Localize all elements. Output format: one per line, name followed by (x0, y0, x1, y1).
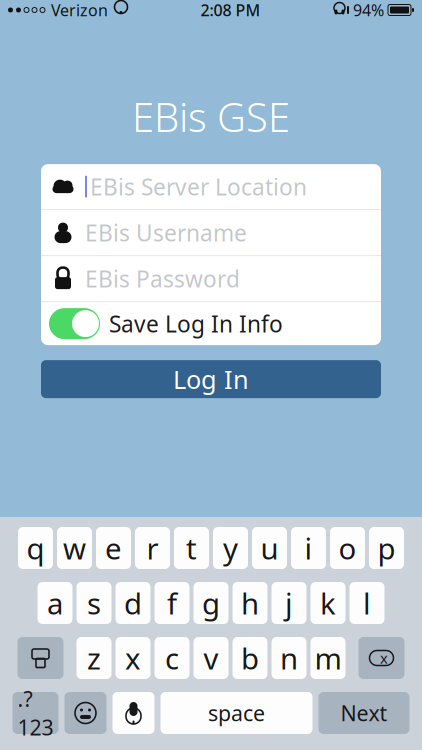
button[interactable]: n (271, 637, 306, 679)
staticText: z (87, 638, 101, 677)
staticText: Next (340, 699, 387, 727)
staticText: k (320, 583, 336, 622)
staticText: Verizon (51, 0, 108, 21)
staticText: e (105, 528, 122, 567)
button[interactable]: p (369, 527, 404, 569)
button[interactable]: m (310, 637, 345, 679)
button[interactable]: EBis Password (41, 256, 381, 302)
button[interactable]: q (18, 527, 53, 569)
staticText: i (304, 528, 312, 567)
staticText: d (124, 583, 142, 622)
button[interactable]: Shift (17, 637, 63, 679)
button[interactable]: c (154, 637, 189, 679)
staticText: n (280, 638, 298, 677)
staticText: c (165, 638, 179, 677)
staticText: t (186, 528, 197, 567)
staticText: EBis Password (85, 264, 240, 294)
staticText: u (260, 528, 278, 567)
button[interactable]: r (135, 527, 170, 569)
staticText: EBis GSE (132, 90, 290, 143)
staticText: Log In (173, 362, 249, 396)
button[interactable]: Log In (41, 360, 381, 398)
staticText: g (202, 583, 220, 622)
staticText: w (63, 528, 86, 567)
button[interactable]: o (330, 527, 365, 569)
button[interactable]: x (115, 637, 150, 679)
staticText: q (26, 528, 44, 567)
staticText: m (314, 638, 341, 677)
staticText: l (363, 583, 371, 622)
staticText: 94% (353, 0, 384, 21)
button[interactable]: e (96, 527, 131, 569)
button[interactable]: w (57, 527, 92, 569)
button[interactable]: Emoji (64, 692, 106, 734)
staticText: y (223, 528, 238, 567)
staticText: a (47, 583, 63, 622)
staticText: h (241, 583, 259, 622)
button[interactable]: EBis Server Location (41, 164, 381, 210)
button[interactable]: v (193, 637, 228, 679)
button[interactable]: d (115, 582, 150, 624)
button[interactable]: z (76, 637, 111, 679)
staticText: j (285, 583, 293, 622)
button[interactable]: space (160, 692, 312, 734)
button[interactable]: g (193, 582, 228, 624)
button[interactable]: l (349, 582, 384, 624)
button[interactable]: h (232, 582, 267, 624)
staticText: Save Log In Info (109, 309, 283, 339)
staticText: v (203, 638, 218, 677)
staticText: .?123 (17, 685, 53, 741)
staticText: f (167, 583, 177, 622)
button[interactable]: a (37, 582, 72, 624)
staticText: x (125, 638, 141, 677)
button[interactable]: Delete (358, 637, 404, 679)
staticText: r (146, 528, 158, 567)
staticText: space (208, 699, 265, 727)
button[interactable]: Save Log In Info (41, 302, 381, 345)
button[interactable]: f (154, 582, 189, 624)
staticText: p (377, 528, 395, 567)
button[interactable]: Next (318, 692, 409, 734)
button[interactable]: EBis Username (41, 210, 381, 256)
button[interactable]: t (174, 527, 209, 569)
button[interactable]: .?123 (12, 692, 58, 734)
button[interactable]: b (232, 637, 267, 679)
staticText: o (338, 528, 356, 567)
staticText: x (380, 648, 388, 668)
button[interactable]: j (271, 582, 306, 624)
staticText: EBis Username (85, 218, 247, 248)
button[interactable]: i (291, 527, 326, 569)
staticText: s (87, 583, 101, 622)
button[interactable]: Dictation (112, 692, 154, 734)
staticText: 2:08 PM (200, 0, 260, 21)
staticText: b (241, 638, 259, 677)
button[interactable]: u (252, 527, 287, 569)
button[interactable]: y (213, 527, 248, 569)
button[interactable]: s (76, 582, 111, 624)
button[interactable]: k (310, 582, 345, 624)
staticText: EBis Server Location (90, 172, 307, 202)
